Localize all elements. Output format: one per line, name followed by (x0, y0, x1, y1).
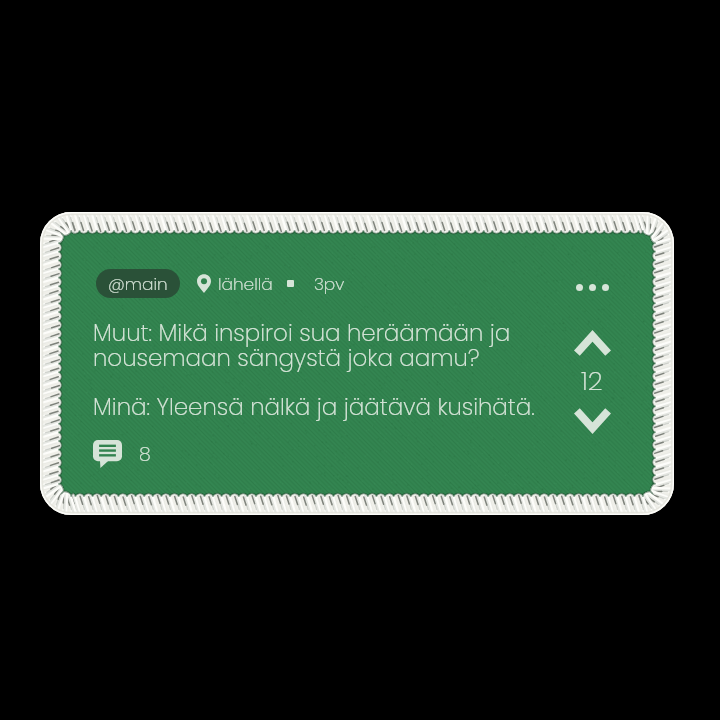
staticText: 8 (139, 441, 151, 468)
button[interactable]: Upvote (566, 326, 618, 362)
staticText: Minä: Yleensä nälkä ja jäätävä kusihätä. (93, 391, 535, 423)
button[interactable]: @main (96, 269, 180, 298)
staticText: 12 (581, 363, 603, 397)
button[interactable]: Downvote (566, 401, 618, 437)
button[interactable]: More options (566, 274, 619, 300)
staticText: @main (108, 272, 168, 296)
staticText: Muut: Mikä inspiroi sua heräämään ja nou… (93, 317, 545, 374)
staticText: lähellä (218, 272, 273, 296)
staticText: 3pv (314, 272, 345, 296)
button[interactable]: 8 (93, 437, 151, 471)
